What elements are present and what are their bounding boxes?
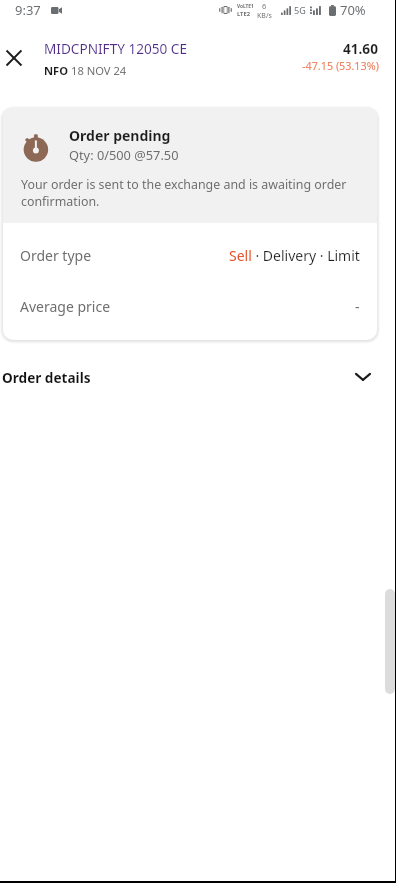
button[interactable]: Average price xyxy=(3,288,377,322)
staticText: -47.15 (53.13%) xyxy=(302,58,379,73)
staticText: Order pending xyxy=(69,126,171,145)
other: Expand order details xyxy=(352,366,374,388)
staticText: Average price xyxy=(20,297,111,316)
staticText: MIDCPNIFTY 12050 CE xyxy=(44,39,188,58)
staticText: KB/s xyxy=(257,11,272,21)
staticText: Order type xyxy=(20,246,92,265)
staticText: NFO 18 NOV 24 xyxy=(44,63,127,78)
staticText: 70% xyxy=(340,1,366,19)
staticText: Qty: 0/500 @57.50 xyxy=(69,146,179,163)
staticText: 5G xyxy=(294,4,306,16)
staticText: LTE2 xyxy=(237,10,251,18)
staticText: Your order is sent to the exchange and i… xyxy=(21,176,356,210)
button[interactable]: MIDCPNIFTY 12050 CE xyxy=(30,34,220,82)
staticText: 41.60 xyxy=(343,39,378,58)
staticText: 6 xyxy=(262,1,267,11)
button[interactable]: Order type xyxy=(3,237,377,271)
staticText: 9:37 xyxy=(15,1,41,19)
staticText: VoLTE1 xyxy=(237,3,254,10)
button[interactable]: Order details xyxy=(0,358,396,396)
staticText: - xyxy=(355,297,360,316)
button[interactable]: Close xyxy=(2,46,26,70)
staticText: Order details xyxy=(2,368,91,387)
staticText: Sell · Delivery · Limit xyxy=(229,246,360,265)
